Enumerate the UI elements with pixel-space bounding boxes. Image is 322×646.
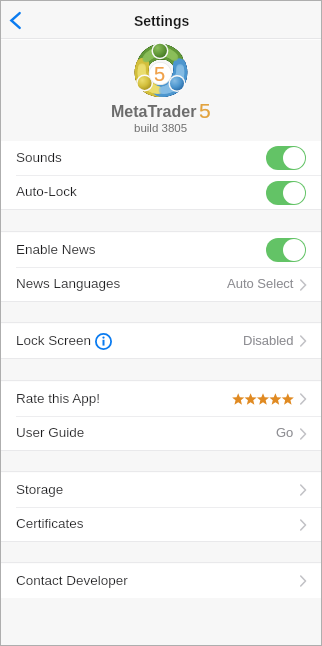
button[interactable]: Back <box>0 4 28 38</box>
button[interactable]: Storage <box>0 473 322 507</box>
button[interactable]: Auto-Lock <box>0 176 322 209</box>
staticText: 5 <box>199 99 211 122</box>
staticText: 5 <box>154 63 166 85</box>
staticText: Contact Developer <box>16 573 128 588</box>
button[interactable]: Lock Screen <box>0 324 322 358</box>
button[interactable]: News Languages <box>0 268 322 301</box>
button[interactable]: Certificates <box>0 508 322 541</box>
staticText: User Guide <box>16 425 85 440</box>
button[interactable]: Rate this App! <box>0 382 322 416</box>
button[interactable]: User Guide <box>0 417 322 450</box>
staticText: Certificates <box>16 516 84 531</box>
button[interactable]: Enable News <box>0 233 322 267</box>
staticText: Go <box>276 425 294 440</box>
staticText: build 3805 <box>134 122 188 135</box>
staticText: Lock Screen <box>16 333 92 348</box>
staticText: Disabled <box>243 333 294 348</box>
staticText: News Languages <box>16 276 121 291</box>
staticText: Enable News <box>16 242 96 257</box>
staticText: MetaTrader <box>111 103 197 121</box>
staticText: Auto-Lock <box>16 184 77 199</box>
button[interactable]: Sounds <box>0 141 322 175</box>
staticText: Auto Select <box>227 276 294 291</box>
button[interactable]: Info <box>93 331 113 351</box>
button[interactable]: Contact Developer <box>0 564 322 598</box>
staticText: Settings <box>134 13 190 29</box>
staticText: Sounds <box>16 150 62 165</box>
staticText: Rate this App! <box>16 391 101 406</box>
staticText: Storage <box>16 482 64 497</box>
